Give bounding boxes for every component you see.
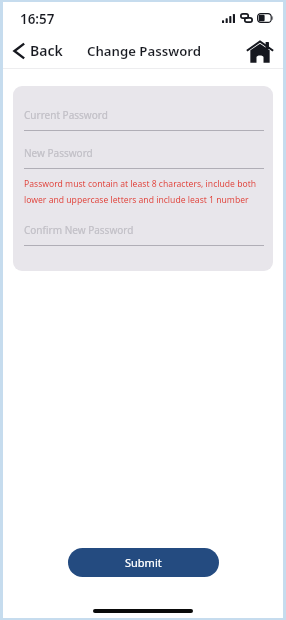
button[interactable]: Confirm New Password (24, 223, 264, 246)
staticText: 16:57 (20, 10, 55, 28)
staticText: Submit (125, 555, 162, 570)
staticText: New Password (24, 146, 93, 160)
button[interactable]: Back (8, 37, 68, 64)
button[interactable]: Home (240, 33, 280, 70)
staticText: Back (30, 41, 63, 60)
staticText: Current Password (24, 108, 108, 122)
button[interactable]: Submit (68, 548, 219, 577)
staticText: Change Password (87, 42, 201, 60)
button[interactable]: New Password (24, 146, 264, 169)
staticText: Confirm New Password (24, 223, 134, 237)
staticText: Password must contain at least 8 charact… (24, 178, 264, 206)
button[interactable]: Current Password (24, 108, 264, 131)
